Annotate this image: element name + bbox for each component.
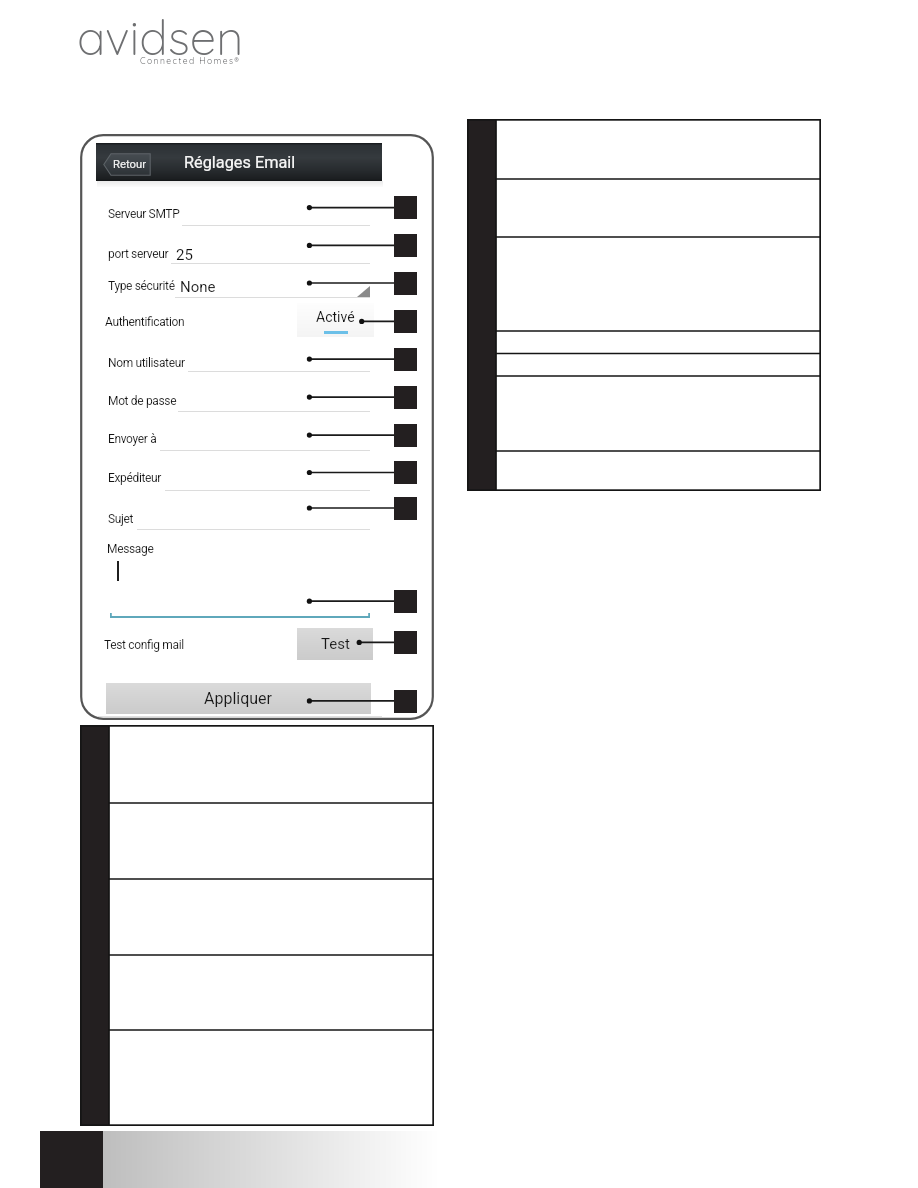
staticText: port serveur <box>108 247 169 261</box>
staticText: Envoyer à <box>108 432 157 446</box>
staticText: Connected Homes® <box>140 55 241 66</box>
button[interactable]: Retour <box>103 153 151 176</box>
staticText: Message <box>107 542 154 556</box>
staticText: Serveur SMTP <box>108 207 180 221</box>
staticText: Réglages Email <box>184 153 296 172</box>
staticText: Type sécurité <box>108 279 175 293</box>
staticText: Sujet <box>108 512 134 526</box>
staticText: Expéditeur <box>108 471 162 485</box>
staticText: Mot de passe <box>108 394 177 408</box>
button[interactable]: Activé <box>297 303 374 337</box>
staticText: Appliquer <box>204 689 273 708</box>
staticText: None <box>180 278 216 296</box>
button[interactable]: Test <box>297 628 373 660</box>
button[interactable]: Appliquer <box>106 683 371 714</box>
staticText: Retour <box>113 158 147 171</box>
staticText: Test config mail <box>104 638 184 652</box>
staticText: Test <box>321 635 350 653</box>
button[interactable]: Réglages Email <box>96 143 382 181</box>
staticText: Nom utilisateur <box>108 356 185 370</box>
staticText: avidsen <box>77 7 244 66</box>
staticText: 25 <box>176 246 193 264</box>
staticText: Authentification <box>105 315 185 329</box>
staticText: Activé <box>316 309 355 325</box>
